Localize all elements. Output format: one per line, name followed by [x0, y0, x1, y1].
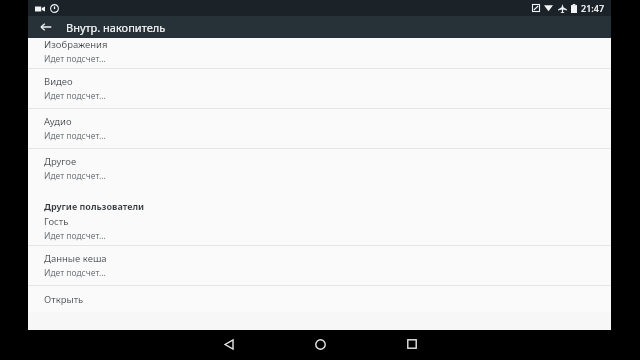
button[interactable]: Назад: [219, 334, 239, 354]
button[interactable]: Изображения: [28, 38, 611, 68]
staticText: Идет подсчет...: [44, 170, 106, 182]
button[interactable]: Видео: [28, 69, 611, 108]
staticText: Идет подсчет...: [44, 267, 106, 279]
staticText: Идет подсчет...: [44, 230, 106, 242]
staticText: Идет подсчет...: [44, 130, 106, 142]
button[interactable]: Данные кеша: [28, 246, 611, 285]
button[interactable]: Обзор: [402, 334, 422, 354]
staticText: Другое: [44, 155, 77, 168]
button[interactable]: Другое: [28, 149, 611, 188]
staticText: Открыть: [44, 293, 84, 306]
button[interactable]: Аудио: [28, 109, 611, 148]
button[interactable]: Главный экран: [310, 334, 330, 354]
staticText: Гость: [44, 215, 69, 228]
staticText: Идет подсчет...: [44, 53, 106, 65]
button[interactable]: Гость: [28, 215, 611, 245]
staticText: Другие пользователи: [44, 200, 145, 212]
staticText: Идет подсчет...: [44, 90, 106, 102]
staticText: 21:47: [581, 2, 605, 14]
staticText: Аудио: [44, 115, 72, 128]
staticText: Видео: [44, 75, 73, 88]
button[interactable]: Открыть: [28, 286, 611, 312]
staticText: Изображения: [44, 38, 108, 51]
staticText: Данные кеша: [44, 252, 107, 265]
button[interactable]: Назад: [36, 17, 56, 37]
staticText: Внутр. накопитель: [66, 20, 166, 35]
